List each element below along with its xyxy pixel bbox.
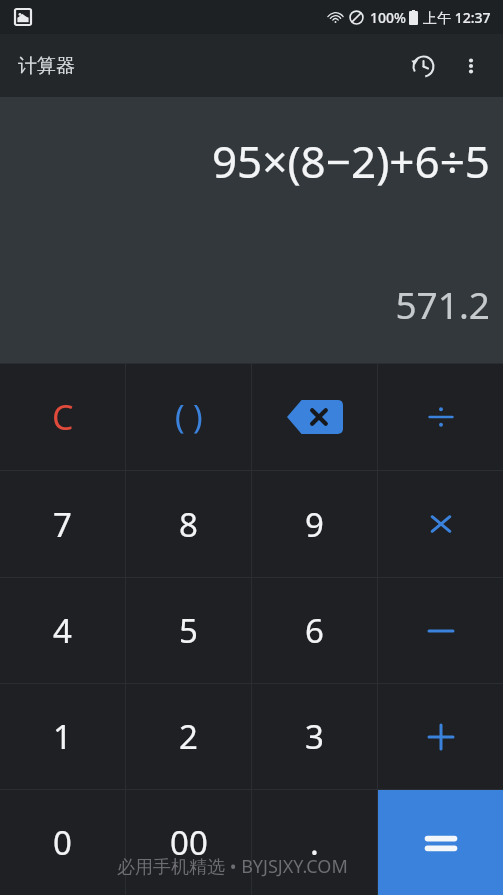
button[interactable]: 1 — [0, 684, 125, 789]
button[interactable]: Backspace — [252, 364, 377, 470]
button[interactable]: 8 — [126, 471, 251, 577]
button[interactable]: 6 — [252, 578, 377, 683]
staticText: 6 — [305, 608, 324, 653]
button[interactable]: Plus — [378, 684, 503, 789]
staticText: 必用手机精选 • BYJSJXY.COM — [117, 854, 348, 879]
button[interactable]: C — [0, 364, 125, 470]
staticText: 9 — [305, 502, 324, 547]
staticText: 3 — [305, 714, 324, 759]
staticText: 上午 12:37 — [423, 8, 491, 27]
button[interactable]: History — [399, 42, 447, 90]
staticText: 8 — [179, 502, 198, 547]
staticText: C — [52, 394, 74, 440]
button[interactable]: 0 — [0, 790, 125, 895]
staticText: ( ) — [175, 395, 203, 439]
staticText: 100% — [370, 8, 406, 27]
button[interactable]: 5 — [126, 578, 251, 683]
staticText: 7 — [53, 502, 72, 547]
staticText: 0 — [53, 820, 72, 865]
button[interactable]: 4 — [0, 578, 125, 683]
button[interactable]: 7 — [0, 471, 125, 577]
button[interactable]: More options — [447, 42, 495, 90]
staticText: 计算器 — [18, 54, 75, 78]
staticText: 2 — [179, 714, 198, 759]
button[interactable]: Multiply — [378, 471, 503, 577]
button[interactable]: Divide — [378, 364, 503, 470]
staticText: 5 — [179, 608, 198, 653]
button[interactable]: 2 — [126, 684, 251, 789]
staticText: 571.2 — [395, 279, 490, 329]
button[interactable]: ( ) — [126, 364, 251, 470]
button[interactable]: Minus — [378, 578, 503, 683]
staticText: 00 — [170, 820, 208, 865]
button[interactable]: . — [252, 790, 377, 895]
staticText: 1 — [53, 714, 72, 759]
button[interactable]: 3 — [252, 684, 377, 789]
staticText: . — [310, 820, 319, 865]
staticText: 4 — [53, 608, 72, 653]
button[interactable]: Equals — [378, 790, 503, 895]
button[interactable]: 00 — [126, 790, 251, 895]
button[interactable]: 9 — [252, 471, 377, 577]
staticText: 95×(8−2)+6÷5 — [211, 131, 490, 191]
